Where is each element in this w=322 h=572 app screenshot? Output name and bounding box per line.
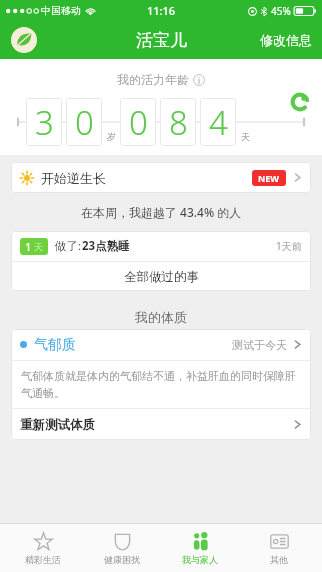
staticText: 3 (35, 100, 54, 145)
button[interactable]: 全部做过的事 (11, 262, 311, 291)
staticText: NEW (258, 172, 280, 184)
staticText: 在本周，我超越了 43.4% 的人 (81, 204, 242, 220)
button[interactable]: 修改信息 (250, 26, 322, 54)
button[interactable]: 健康困扰 (86, 528, 158, 568)
staticText: 11:16 (147, 3, 176, 18)
staticText: 天 (241, 131, 250, 142)
staticText: 1天前 (276, 239, 302, 253)
staticText: 测试于今天 (232, 338, 287, 352)
staticText: 中国移动 (41, 4, 81, 17)
staticText: i (198, 75, 201, 86)
staticText: 1 (25, 239, 32, 254)
staticText: 4 (209, 100, 228, 145)
button[interactable]: 1 (11, 231, 311, 261)
button[interactable]: 精彩生活 (7, 528, 79, 568)
staticText: 8 (169, 100, 188, 145)
staticText: 做了: (55, 238, 82, 254)
staticText: 0 (75, 100, 94, 145)
staticText: 修改信息 (260, 32, 312, 48)
other: Refresh (290, 92, 310, 112)
button[interactable]: 重新测试体质 (11, 409, 311, 440)
staticText: 23点熟睡 (82, 238, 130, 254)
staticText: 气郁体质就是体内的气郁结不通，补益肝血的同时保障肝气通畅。 (21, 369, 301, 400)
staticText: 健康困扰 (104, 554, 140, 565)
button[interactable]: 其他 (243, 528, 315, 568)
button[interactable]: 我的活力年龄 (111, 70, 211, 89)
staticText: 我与家人 (182, 554, 218, 565)
staticText: 重新测试体质 (20, 417, 95, 433)
staticText: 我的体质 (135, 309, 187, 325)
staticText: 0 (129, 100, 148, 145)
staticText: 岁 (107, 131, 116, 142)
staticText: 其他 (270, 554, 288, 565)
staticText: 精彩生活 (25, 554, 61, 565)
staticText: 45% (271, 4, 291, 18)
button[interactable]: 气郁质 (11, 329, 311, 360)
staticText: 全部做过的事 (124, 269, 199, 285)
staticText: 活宝儿 (136, 30, 187, 51)
staticText: 开始逆生长 (41, 170, 106, 186)
staticText: 我的活力年龄 (117, 72, 189, 87)
button[interactable]: App logo (11, 27, 37, 53)
staticText: 天 (34, 241, 43, 252)
button[interactable]: 开始逆生长 (11, 162, 311, 193)
staticText: 气郁质 (34, 336, 76, 354)
button[interactable]: 我与家人 (164, 528, 236, 568)
